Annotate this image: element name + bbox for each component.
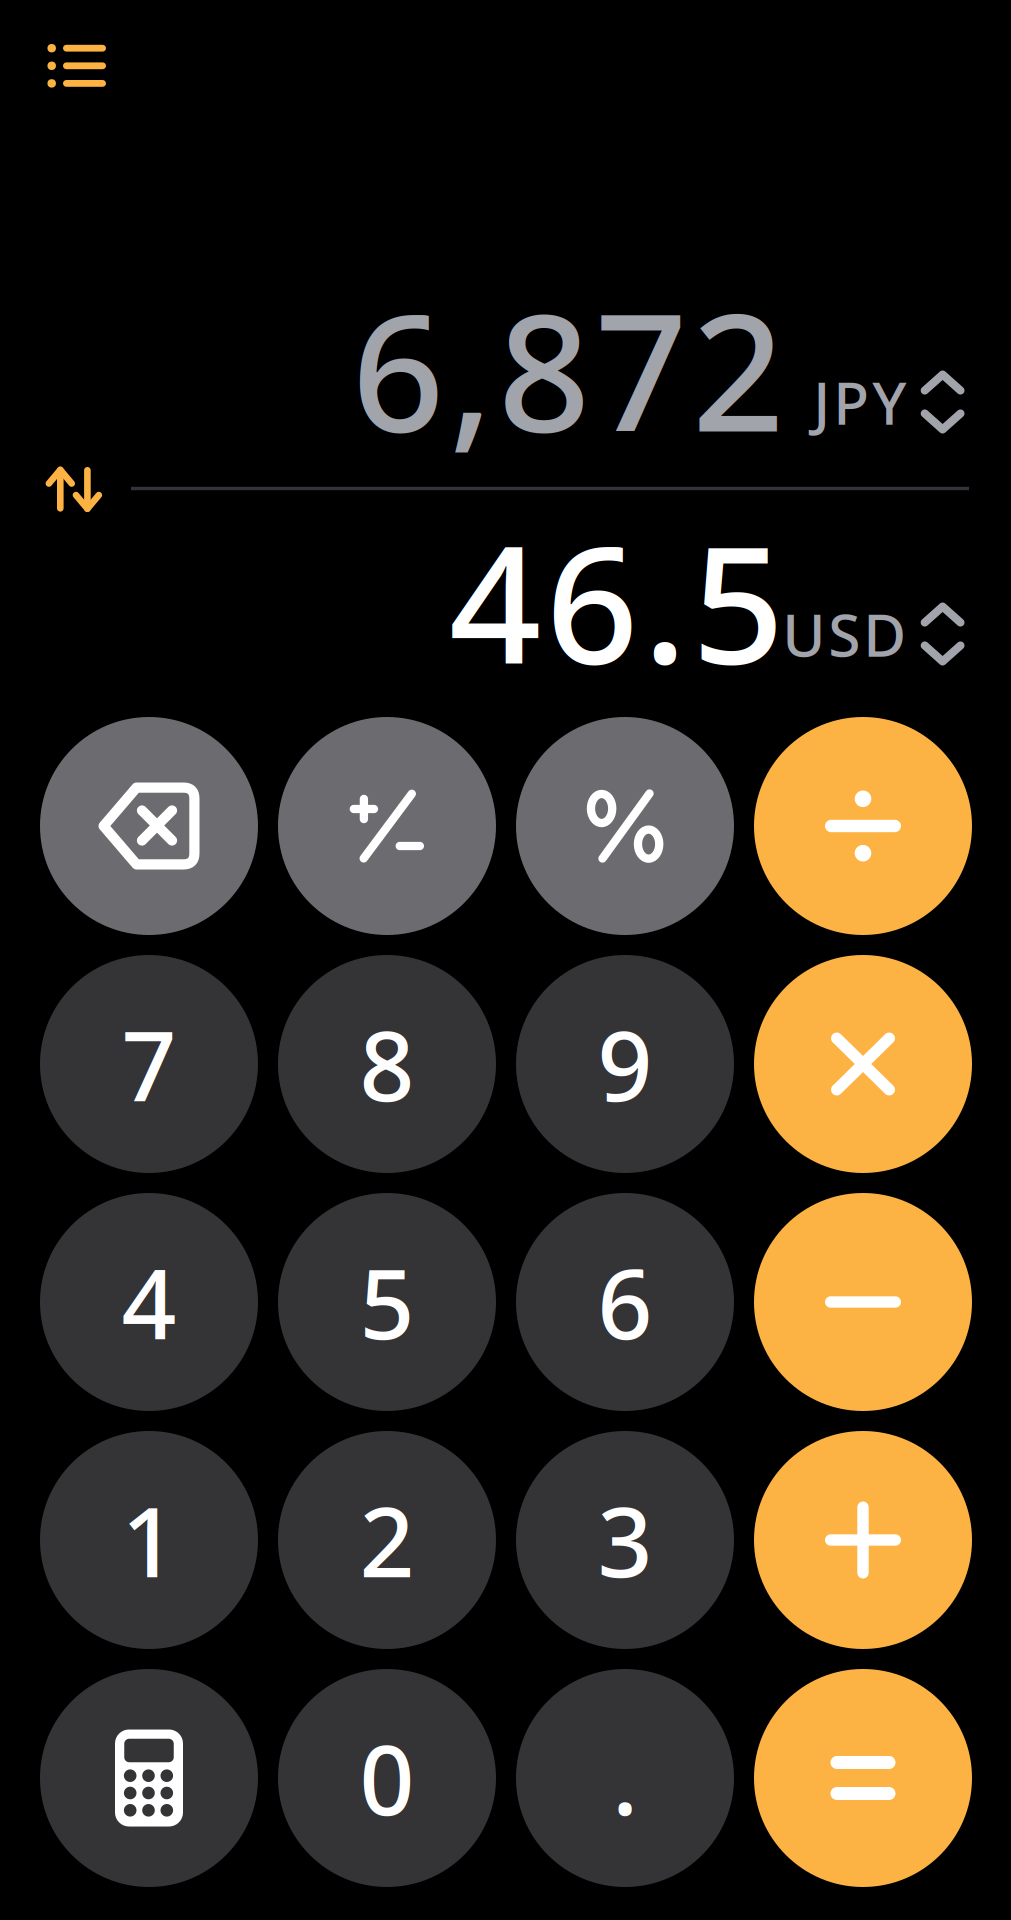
button[interactable]: 4 xyxy=(40,1193,258,1411)
button[interactable]: 1 xyxy=(40,1431,258,1649)
button[interactable]: 9 xyxy=(516,955,734,1173)
button[interactable]: Currency list xyxy=(25,18,129,114)
button[interactable]: 7 xyxy=(40,955,258,1173)
button[interactable]: Calculator xyxy=(40,1669,258,1887)
staticText: 3 xyxy=(597,1476,652,1604)
button[interactable]: 0 xyxy=(278,1669,496,1887)
staticText: 1 xyxy=(121,1476,176,1604)
staticText: . xyxy=(612,1714,638,1842)
button[interactable]: 2 xyxy=(278,1431,496,1649)
staticText: 46.5 xyxy=(449,494,784,708)
staticText: USD xyxy=(782,595,906,673)
button[interactable]: . xyxy=(516,1669,734,1887)
button[interactable]: Equals xyxy=(754,1669,972,1887)
button[interactable]: Toggle sign xyxy=(278,717,496,935)
staticText: JPY xyxy=(813,363,906,441)
button[interactable]: Delete xyxy=(40,717,258,935)
button[interactable]: JPY xyxy=(705,347,965,457)
staticText: 8 xyxy=(359,1000,414,1128)
button[interactable]: Percent xyxy=(516,717,734,935)
button[interactable]: 6 xyxy=(516,1193,734,1411)
button[interactable]: Multiply xyxy=(754,955,972,1173)
staticText: 9 xyxy=(597,1000,652,1128)
staticText: 6 xyxy=(597,1238,652,1366)
button[interactable]: 5 xyxy=(278,1193,496,1411)
staticText: 7 xyxy=(121,1000,176,1128)
button[interactable]: Divide xyxy=(754,717,972,935)
staticText: 6,872 xyxy=(352,262,784,476)
button[interactable]: USD xyxy=(705,579,965,689)
staticText: 0 xyxy=(359,1714,414,1842)
button[interactable]: Subtract xyxy=(754,1193,972,1411)
button[interactable]: 8 xyxy=(278,955,496,1173)
staticText: 4 xyxy=(121,1238,176,1366)
button[interactable]: Swap currencies xyxy=(26,444,122,534)
staticText: 2 xyxy=(359,1476,414,1604)
button[interactable]: 3 xyxy=(516,1431,734,1649)
button[interactable]: Add xyxy=(754,1431,972,1649)
staticText: 5 xyxy=(359,1238,414,1366)
